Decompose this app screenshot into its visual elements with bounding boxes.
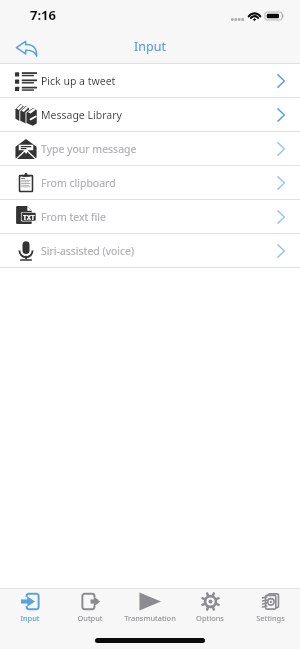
staticText: From text file [41, 210, 107, 224]
staticText: Type your message [41, 142, 137, 156]
button[interactable]: Type your message [0, 132, 300, 166]
staticText: TXT [23, 213, 35, 222]
staticText: 7:16 [30, 6, 56, 24]
staticText: From clipboard [41, 176, 116, 190]
button[interactable]: TXT [0, 200, 300, 234]
staticText: Output [77, 613, 103, 623]
staticText: Transmutation [124, 613, 176, 623]
button[interactable]: Back [0, 28, 46, 64]
button[interactable]: Settings [240, 589, 300, 623]
button[interactable]: Message Library [0, 98, 300, 132]
button[interactable]: Output [60, 589, 120, 623]
staticText: Siri-assisted (voice) [41, 244, 135, 258]
staticText: Message Library [41, 108, 122, 122]
button[interactable]: Siri-assisted (voice) [0, 234, 300, 268]
staticText: Options [196, 613, 224, 623]
staticText: Pick up a tweet [41, 74, 116, 88]
staticText: Input [134, 38, 166, 55]
staticText: Input [20, 613, 40, 623]
button[interactable]: Pick up a tweet [0, 64, 300, 98]
button[interactable]: Input [0, 589, 60, 623]
staticText: Settings [256, 613, 285, 623]
button[interactable]: Options [180, 589, 240, 623]
button[interactable]: From clipboard [0, 166, 300, 200]
button[interactable]: Transmutation [120, 589, 180, 623]
